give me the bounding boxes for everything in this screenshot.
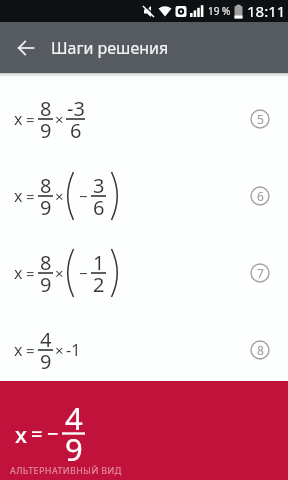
staticText: 9 (40, 348, 52, 375)
staticText: 9 (65, 428, 83, 470)
staticText: = (26, 109, 35, 129)
staticText: 7 (257, 265, 264, 281)
staticText: АЛЬТЕРНАТИВНЫЙ ВИД (10, 464, 122, 476)
staticText: − (79, 186, 88, 206)
staticText: -3 (67, 95, 85, 122)
staticText: × (55, 263, 64, 283)
staticText: -1 (66, 339, 81, 361)
button[interactable]: x (0, 241, 288, 304)
staticText: 8 (257, 342, 264, 358)
staticText: 4 (40, 326, 52, 353)
staticText: − (79, 263, 88, 283)
staticText: 3 (93, 172, 105, 199)
staticText: 8 (40, 95, 52, 122)
button[interactable]: x (0, 164, 288, 227)
button[interactable]: x (0, 318, 288, 381)
staticText: 19 % (208, 4, 231, 18)
staticText: x (15, 419, 27, 449)
staticText: 8 (40, 172, 52, 199)
staticText: × (55, 186, 64, 206)
staticText: 6 (70, 117, 82, 144)
staticText: 5 (257, 111, 264, 127)
staticText: 4 (65, 397, 83, 439)
staticText: x (14, 108, 23, 130)
staticText: x (14, 339, 23, 361)
staticText: 6 (257, 188, 264, 204)
staticText: x (14, 262, 23, 284)
button[interactable]: x (0, 381, 288, 480)
staticText: 9 (40, 194, 52, 221)
button[interactable]: x (0, 87, 288, 150)
staticText: 2 (93, 271, 105, 298)
staticText: 6 (93, 194, 105, 221)
staticText: × (55, 109, 64, 129)
staticText: × (55, 340, 64, 360)
staticText: 9 (40, 271, 52, 298)
staticText: = (31, 420, 43, 447)
staticText: Шаги решения (51, 37, 169, 59)
staticText: 9 (40, 117, 52, 144)
staticText: = (26, 340, 35, 360)
staticText: 1 (93, 249, 105, 276)
staticText: 18:11 (247, 1, 286, 21)
button[interactable] (0, 22, 51, 73)
staticText: 8 (40, 249, 52, 276)
staticText: = (26, 263, 35, 283)
staticText: = (26, 186, 35, 206)
staticText: x (14, 185, 23, 207)
staticText: − (47, 420, 59, 447)
